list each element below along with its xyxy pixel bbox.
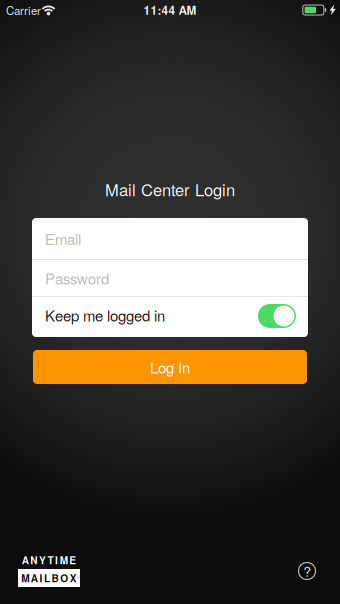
staticText: ANYTIME xyxy=(22,553,76,567)
staticText: MAILBOX xyxy=(21,571,77,585)
staticText: Keep me logged in xyxy=(45,304,165,326)
button[interactable]: Password xyxy=(32,260,308,296)
staticText: Mail Center Login xyxy=(105,177,235,201)
staticText: Password xyxy=(45,267,109,289)
button[interactable]: Log In xyxy=(33,350,307,384)
staticText: 11:44 AM xyxy=(143,2,196,18)
staticText: ? xyxy=(303,561,310,581)
staticText: Log In xyxy=(150,356,190,378)
button[interactable]: Help xyxy=(294,558,320,584)
button[interactable]: Keep me logged in xyxy=(32,297,308,337)
staticText: Carrier xyxy=(6,2,41,18)
staticText: Email xyxy=(45,228,81,249)
button[interactable]: Email xyxy=(32,218,308,259)
